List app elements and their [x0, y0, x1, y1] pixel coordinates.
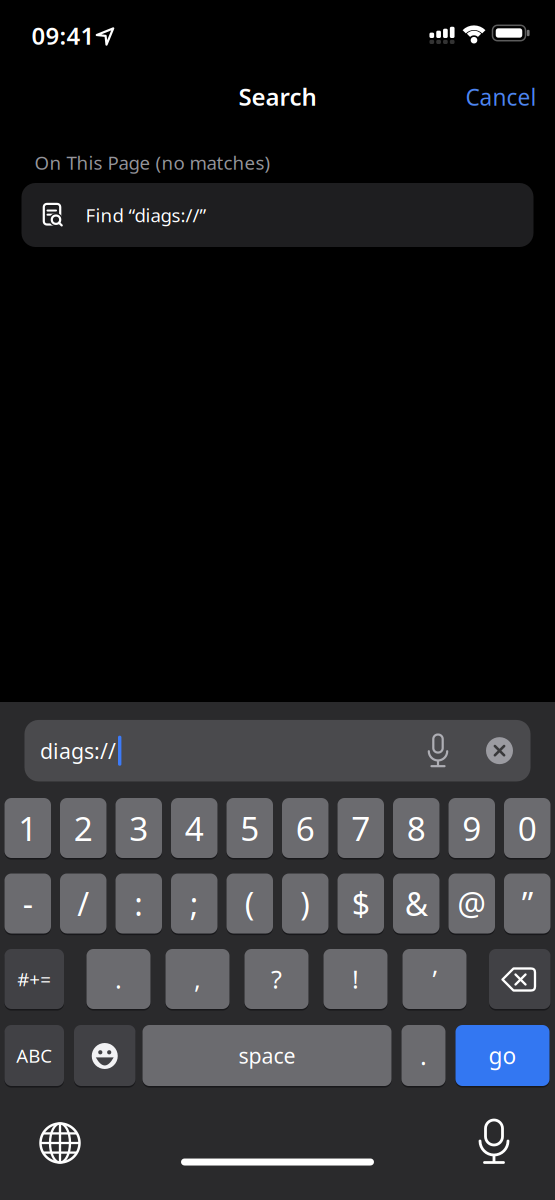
staticText: ; — [190, 882, 199, 925]
button[interactable]: 7 — [337, 798, 384, 858]
button[interactable]: & — [393, 873, 439, 933]
button[interactable]: 5 — [226, 798, 273, 858]
staticText: 1 — [18, 806, 37, 850]
staticText: Search — [238, 81, 316, 112]
button[interactable]: $ — [337, 873, 384, 933]
staticText: On This Page (no matches) — [34, 150, 270, 175]
button[interactable]: , — [165, 949, 229, 1009]
button[interactable] — [74, 1025, 135, 1086]
staticText: space — [238, 1041, 295, 1070]
staticText: ? — [271, 962, 282, 996]
staticText: 5 — [240, 806, 259, 850]
button[interactable]: ” — [504, 873, 550, 933]
staticText: ! — [352, 962, 359, 996]
button[interactable]: ABC — [4, 1025, 64, 1086]
button[interactable]: ’ — [402, 949, 466, 1009]
button[interactable]: space — [142, 1025, 391, 1086]
button[interactable]: Cancel — [465, 82, 536, 112]
button[interactable]: #+= — [4, 949, 64, 1009]
staticText: ) — [300, 882, 310, 925]
button[interactable]: 1 — [4, 798, 51, 858]
staticText: / — [77, 882, 89, 925]
button[interactable]: 3 — [115, 798, 162, 858]
button[interactable]: ; — [171, 873, 217, 933]
button[interactable]: ( — [226, 873, 273, 933]
staticText: 0 — [518, 806, 537, 850]
button[interactable]: ? — [244, 949, 308, 1009]
staticText: , — [194, 962, 201, 996]
button[interactable]: ) — [282, 873, 328, 933]
button[interactable] — [38, 1121, 82, 1165]
button[interactable]: 0 — [504, 798, 550, 858]
staticText: 3 — [129, 806, 148, 850]
button[interactable]: @ — [448, 873, 495, 933]
button[interactable] — [469, 1115, 519, 1165]
staticText: 6 — [296, 806, 315, 850]
staticText: . — [115, 962, 122, 996]
button[interactable]: 6 — [282, 798, 328, 858]
staticText: 7 — [351, 806, 370, 850]
staticText: . — [420, 1039, 427, 1072]
staticText: & — [405, 882, 428, 925]
button[interactable]: . — [86, 949, 150, 1009]
button[interactable]: 4 — [171, 798, 217, 858]
button[interactable]: : — [115, 873, 162, 933]
button[interactable]: - — [4, 873, 51, 933]
staticText: Find “diags://” — [85, 203, 206, 227]
staticText: #+= — [17, 967, 51, 991]
staticText: go — [488, 1040, 516, 1070]
staticText: 4 — [185, 806, 204, 850]
button[interactable]: / — [60, 873, 106, 933]
staticText: ’ — [432, 962, 436, 996]
button[interactable]: . — [401, 1025, 445, 1086]
staticText: Cancel — [465, 82, 536, 112]
staticText: ABC — [16, 1043, 52, 1068]
button[interactable]: diags:// — [24, 720, 530, 781]
staticText: $ — [352, 882, 370, 925]
staticText: 9 — [462, 806, 481, 850]
staticText: @ — [457, 882, 486, 925]
button[interactable]: 2 — [60, 798, 106, 858]
button[interactable]: ! — [323, 949, 387, 1009]
button[interactable]: Find “diags://” — [21, 183, 533, 247]
button[interactable]: 9 — [448, 798, 495, 858]
staticText: 09:41 — [31, 20, 94, 51]
button[interactable]: go — [455, 1025, 549, 1086]
staticText: - — [23, 882, 33, 925]
staticText: 2 — [74, 806, 93, 850]
staticText: ” — [522, 882, 533, 925]
button[interactable] — [489, 949, 550, 1009]
staticText: : — [134, 882, 143, 925]
staticText: 8 — [407, 806, 426, 850]
staticText: diags:// — [40, 736, 116, 765]
button[interactable]: 8 — [393, 798, 439, 858]
staticText: ( — [245, 882, 255, 925]
